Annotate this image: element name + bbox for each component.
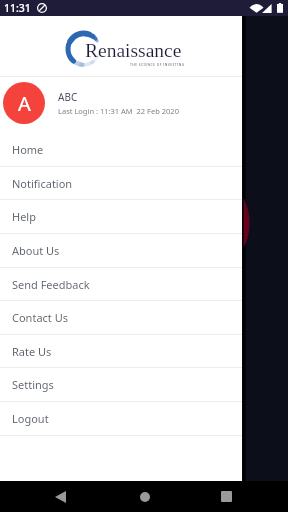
staticText: 11:31 xyxy=(4,1,31,15)
button[interactable]: Back xyxy=(40,481,81,512)
staticText: THE SCIENCE OF INVESTING xyxy=(130,62,185,66)
button[interactable]: Logout xyxy=(0,402,242,436)
staticText: ABC xyxy=(58,90,78,104)
staticText: Help xyxy=(12,209,36,224)
button[interactable]: Contact Us xyxy=(0,301,242,335)
button[interactable]: Rate Us xyxy=(0,335,242,369)
staticText: Home xyxy=(12,142,44,157)
staticText: Settings xyxy=(12,377,54,392)
staticText: Rate Us xyxy=(12,344,52,359)
staticText: Last Login : 11:31 AM 22 Feb 2020 xyxy=(58,106,179,116)
button[interactable]: About Us xyxy=(0,234,242,268)
button[interactable]: A xyxy=(0,77,242,133)
button[interactable]: Recent apps xyxy=(206,481,247,512)
button[interactable]: Home xyxy=(124,481,165,512)
staticText: About Us xyxy=(12,243,60,258)
button[interactable]: Home xyxy=(0,133,242,167)
staticText: Contact Us xyxy=(12,310,68,325)
button[interactable]: Notification xyxy=(0,167,242,201)
staticText: Logout xyxy=(12,411,49,426)
staticText: A xyxy=(18,90,31,117)
button[interactable]: Help xyxy=(0,200,242,234)
button[interactable]: Send Feedback xyxy=(0,268,242,302)
staticText: Send Feedback xyxy=(12,277,90,292)
button[interactable]: Settings xyxy=(0,368,242,402)
staticText: Notification xyxy=(12,176,73,191)
staticText: Renaissance xyxy=(85,40,182,62)
